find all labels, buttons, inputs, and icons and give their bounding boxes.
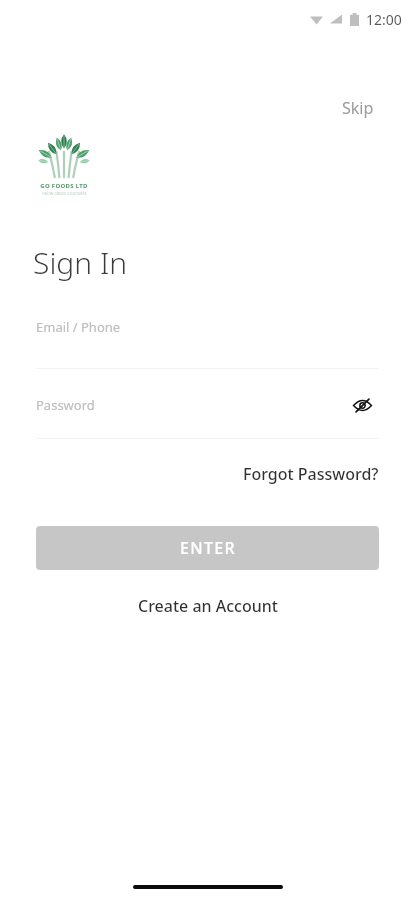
staticText: Sign In <box>33 242 128 283</box>
button[interactable]: Forgot Password? <box>239 458 383 490</box>
staticText: GROW GREEN GOODNESS <box>42 191 87 196</box>
button[interactable]: Show password <box>345 388 379 422</box>
button[interactable]: Skip <box>332 90 384 126</box>
staticText: Create an Account <box>138 595 278 617</box>
button[interactable]: Create an Account <box>130 590 286 622</box>
staticText: 12:00 <box>366 10 402 29</box>
staticText: GO FOODS LTD <box>40 182 88 190</box>
staticText: Skip <box>342 97 374 119</box>
button[interactable]: Email / Phone <box>36 318 379 369</box>
staticText: Password <box>36 396 95 414</box>
staticText: Email / Phone <box>36 318 121 336</box>
button[interactable]: Password <box>36 396 345 414</box>
staticText: Forgot Password? <box>243 463 379 485</box>
button[interactable]: ENTER <box>36 526 379 570</box>
staticText: ENTER <box>180 537 236 559</box>
